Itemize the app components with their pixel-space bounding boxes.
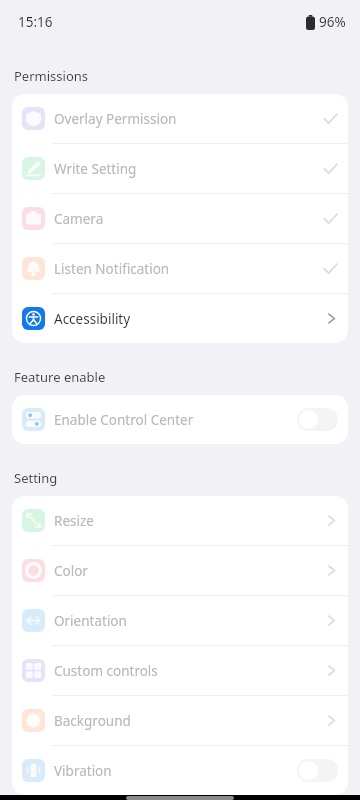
staticText: Orientation — [54, 612, 127, 630]
staticText: Write Setting — [54, 160, 137, 178]
staticText: Listen Notification — [54, 260, 170, 278]
button[interactable]: Overlay Permission — [12, 94, 348, 143]
staticText: Overlay Permission — [54, 110, 177, 128]
staticText: Resize — [54, 512, 94, 530]
staticText: Color — [54, 562, 88, 580]
staticText: Camera — [54, 210, 104, 228]
staticText: Accessibility — [54, 310, 131, 328]
staticText: 15:16 — [18, 13, 53, 31]
button[interactable]: Color — [12, 546, 348, 595]
staticText: Enable Control Center — [54, 411, 194, 429]
button[interactable]: Background — [12, 696, 348, 745]
button[interactable]: Enable Control Center toggle — [297, 408, 338, 431]
button[interactable]: Write Setting — [12, 144, 348, 193]
button[interactable]: Vibration toggle — [297, 759, 338, 782]
staticText: Custom controls — [54, 662, 158, 680]
staticText: Feature enable — [14, 368, 106, 386]
staticText: Background — [54, 712, 131, 730]
button[interactable]: Resize — [12, 496, 348, 545]
button[interactable]: Accessibility — [12, 294, 348, 343]
staticText: 96% — [319, 13, 346, 31]
button[interactable]: Vibration — [12, 746, 348, 795]
staticText: Permissions — [14, 67, 89, 85]
button[interactable]: Camera — [12, 194, 348, 243]
button[interactable]: Listen Notification — [12, 244, 348, 293]
staticText: Setting — [14, 469, 58, 487]
button[interactable]: Enable Control Center — [12, 395, 348, 444]
button[interactable]: Custom controls — [12, 646, 348, 695]
button[interactable]: Orientation — [12, 596, 348, 645]
staticText: Vibration — [54, 762, 112, 780]
